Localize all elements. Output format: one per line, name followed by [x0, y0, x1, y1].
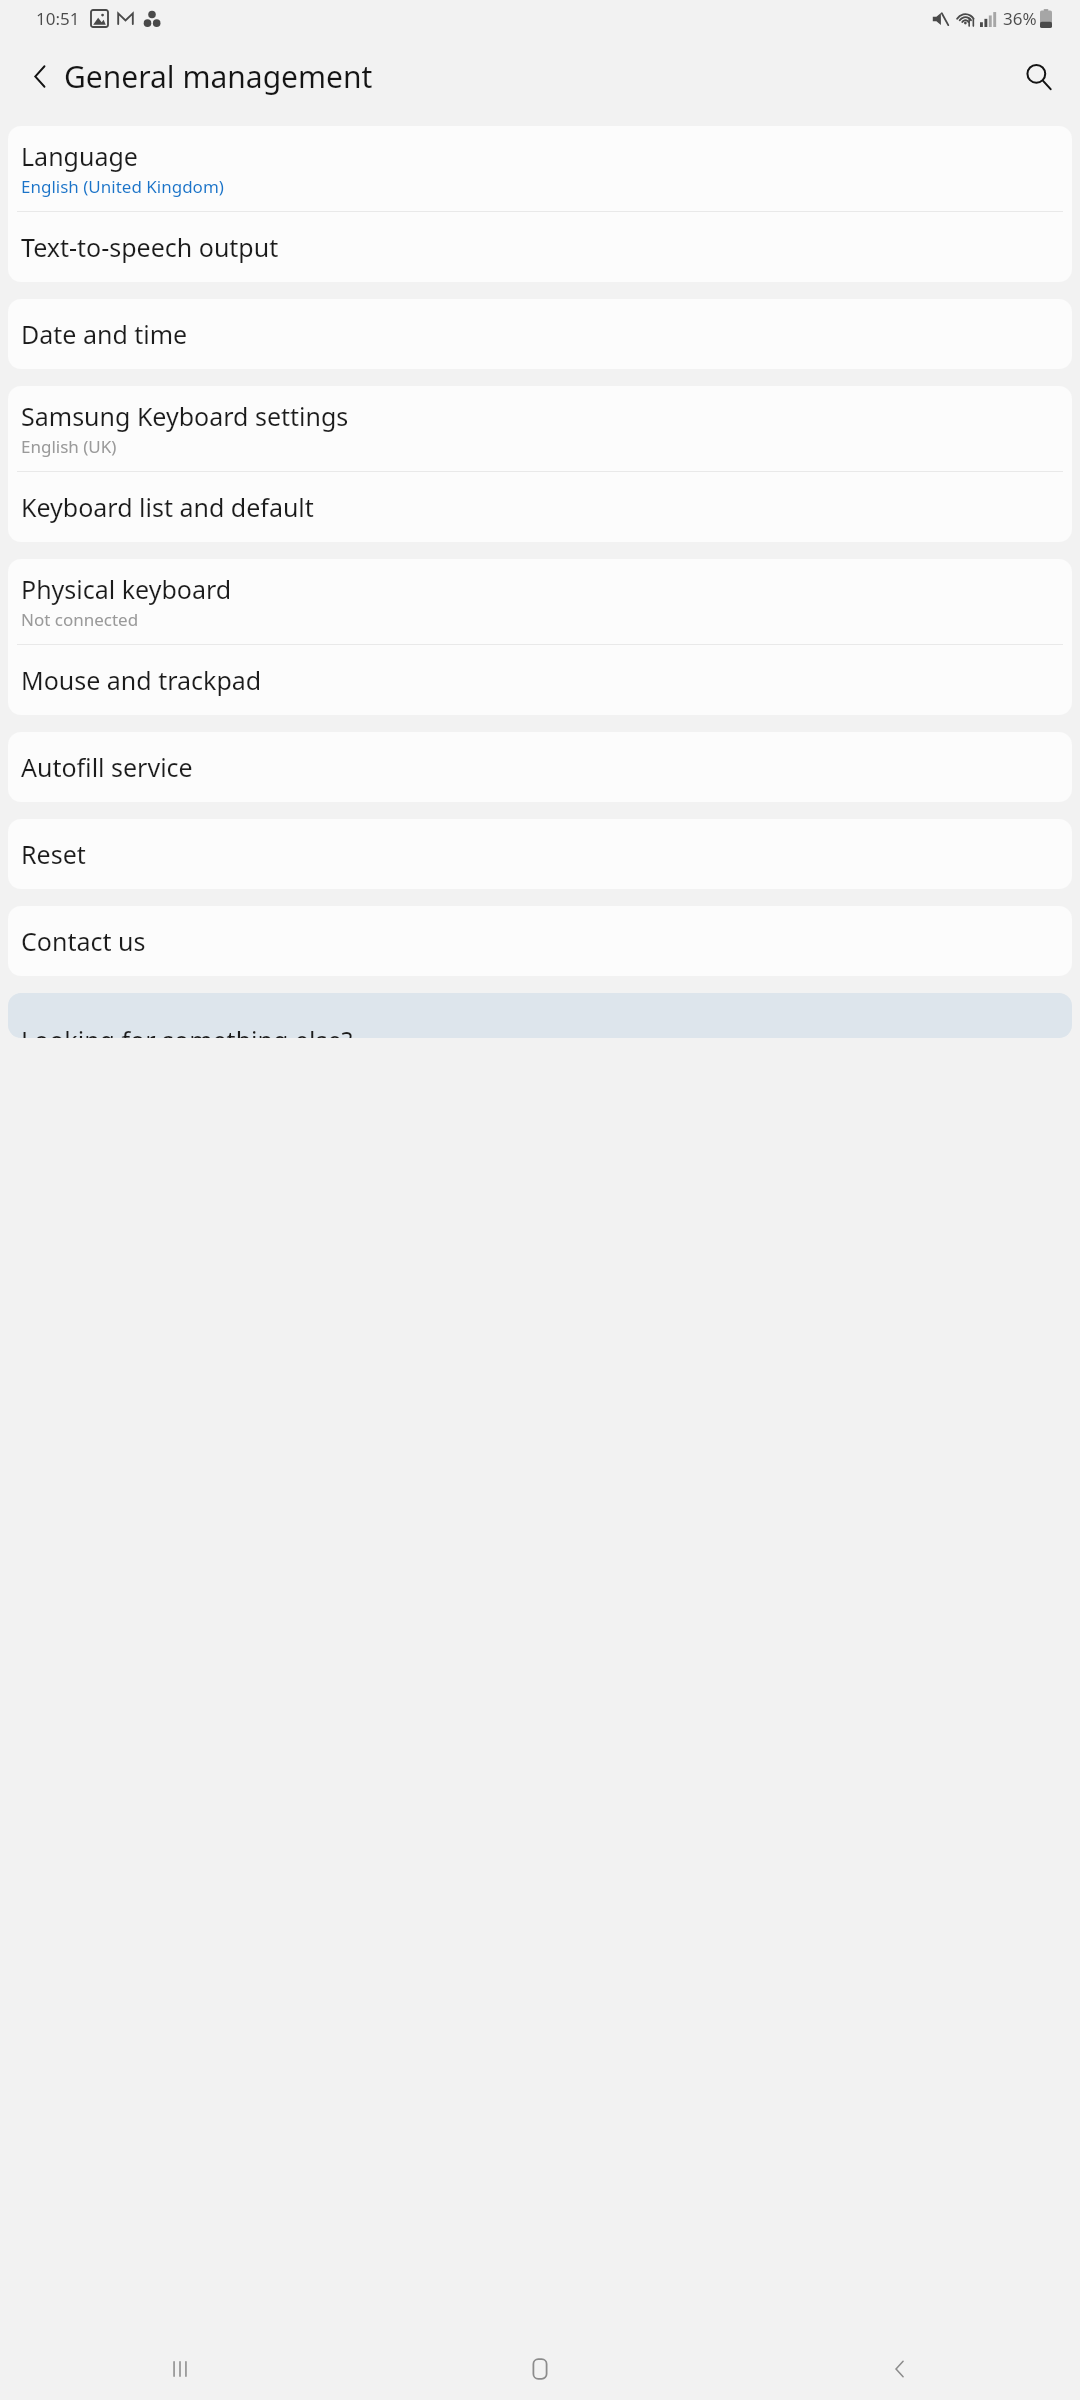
- button[interactable]: Home: [360, 2338, 720, 2400]
- button[interactable]: Text-to-speech output: [8, 212, 1072, 282]
- button[interactable]: Samsung Keyboard settings: [8, 386, 1072, 471]
- staticText: General management: [64, 56, 373, 97]
- button[interactable]: Back: [14, 50, 66, 102]
- staticText: Physical keyboard: [21, 572, 232, 606]
- staticText: Not connected: [21, 608, 139, 631]
- button[interactable]: Keyboard list and default: [8, 472, 1072, 542]
- staticText: Contact us: [21, 924, 146, 958]
- button[interactable]: Recent apps: [0, 2338, 360, 2400]
- button[interactable]: Search: [1012, 50, 1064, 102]
- staticText: Looking for something else?: [21, 1023, 353, 1038]
- button[interactable]: Language: [8, 126, 1072, 211]
- button[interactable]: Physical keyboard: [8, 559, 1072, 644]
- button[interactable]: Back: [720, 2338, 1080, 2400]
- staticText: Keyboard list and default: [21, 490, 314, 524]
- button[interactable]: Reset: [8, 819, 1072, 889]
- button[interactable]: Looking for something else?: [8, 993, 1072, 1038]
- staticText: Language: [21, 139, 138, 173]
- staticText: Date and time: [21, 317, 188, 351]
- staticText: English (UK): [21, 435, 117, 458]
- staticText: Reset: [21, 837, 86, 871]
- staticText: 36%: [1003, 7, 1037, 30]
- button[interactable]: Autofill service: [8, 732, 1072, 802]
- staticText: Samsung Keyboard settings: [21, 399, 349, 433]
- staticText: English (United Kingdom): [21, 175, 224, 198]
- button[interactable]: Contact us: [8, 906, 1072, 976]
- button[interactable]: Date and time: [8, 299, 1072, 369]
- button[interactable]: Mouse and trackpad: [8, 645, 1072, 715]
- staticText: Mouse and trackpad: [21, 663, 262, 697]
- staticText: Text-to-speech output: [21, 230, 279, 264]
- staticText: Autofill service: [21, 750, 193, 784]
- staticText: 10:51: [36, 7, 80, 30]
